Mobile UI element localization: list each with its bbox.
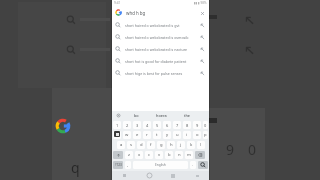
button[interactable]: Insert suggestion bbox=[199, 46, 206, 53]
button[interactable]: 1 bbox=[113, 121, 121, 129]
button[interactable]: Keyboard settings bbox=[112, 111, 125, 120]
staticText: m bbox=[187, 152, 191, 158]
button[interactable]: l bbox=[197, 141, 205, 149]
staticText: z bbox=[128, 152, 130, 158]
staticText: whd h bg bbox=[126, 10, 198, 16]
button[interactable]: , bbox=[125, 161, 131, 169]
button[interactable] bbox=[198, 161, 208, 169]
staticText: t bbox=[156, 132, 158, 138]
staticText: g bbox=[160, 142, 163, 148]
button[interactable]: x bbox=[135, 151, 143, 159]
staticText: j bbox=[180, 142, 182, 148]
staticText: hoera bbox=[156, 113, 167, 118]
staticText: i bbox=[186, 132, 188, 138]
button[interactable]: bo bbox=[125, 111, 147, 120]
button[interactable]: q bbox=[113, 131, 121, 139]
button[interactable]: p bbox=[203, 131, 208, 139]
staticText: r bbox=[146, 132, 148, 138]
staticText: 6 bbox=[166, 123, 169, 128]
staticText: y bbox=[166, 132, 169, 138]
button[interactable]: d bbox=[137, 141, 145, 149]
button[interactable]: n bbox=[175, 151, 183, 159]
button[interactable]: e bbox=[133, 131, 141, 139]
button[interactable]: whd h bg bbox=[115, 6, 206, 19]
button[interactable]: v bbox=[155, 151, 163, 159]
staticText: n bbox=[178, 152, 181, 158]
button[interactable]: 8 bbox=[183, 121, 191, 129]
button[interactable]: short haired o webcbrated is nacture bbox=[115, 43, 206, 55]
staticText: 0 bbox=[204, 123, 207, 128]
button[interactable]: g bbox=[157, 141, 165, 149]
staticText: 1 bbox=[116, 123, 119, 128]
button[interactable]: i bbox=[183, 131, 191, 139]
button[interactable]: r bbox=[143, 131, 151, 139]
staticText: ▮▮ ▮ 98% bbox=[194, 1, 207, 5]
button[interactable]: f bbox=[147, 141, 155, 149]
staticText: f bbox=[150, 142, 152, 148]
staticText: 8 bbox=[186, 123, 189, 128]
button[interactable]: a bbox=[117, 141, 125, 149]
button[interactable]: the bbox=[176, 111, 198, 120]
button[interactable] bbox=[113, 151, 123, 159]
staticText: o bbox=[196, 132, 199, 138]
button[interactable]: s bbox=[127, 141, 135, 149]
staticText: bo bbox=[134, 113, 139, 118]
button[interactable]: Insert suggestion bbox=[199, 34, 206, 41]
button[interactable]: Back bbox=[112, 171, 137, 180]
button[interactable]: Insert suggestion bbox=[199, 22, 206, 29]
staticText: w bbox=[125, 132, 129, 138]
button[interactable]: o bbox=[193, 131, 201, 139]
staticText: 7 bbox=[176, 123, 179, 128]
staticText: 4 bbox=[146, 123, 149, 128]
button[interactable]: u bbox=[173, 131, 181, 139]
staticText: u bbox=[176, 132, 179, 138]
staticText: short hige is best for pulse senses bbox=[125, 71, 199, 76]
button[interactable] bbox=[195, 151, 205, 159]
staticText: v bbox=[158, 152, 161, 158]
staticText: 0 bbox=[248, 140, 257, 159]
button[interactable]: short haired o webcbrated is gvt bbox=[115, 19, 206, 31]
button[interactable]: t bbox=[153, 131, 161, 139]
button[interactable]: h bbox=[167, 141, 175, 149]
button[interactable]: 9 bbox=[193, 121, 201, 129]
button[interactable]: 7 bbox=[173, 121, 181, 129]
staticText: ?123 bbox=[115, 163, 122, 167]
button[interactable]: m bbox=[185, 151, 193, 159]
button[interactable]: 5 bbox=[153, 121, 161, 129]
staticText: , bbox=[127, 162, 129, 168]
staticText: . bbox=[192, 162, 194, 168]
staticText: short haired o webcbrated is osmosib bbox=[125, 35, 199, 40]
button[interactable]: y bbox=[163, 131, 171, 139]
staticText: c bbox=[148, 152, 151, 158]
button[interactable]: Hide keyboard bbox=[185, 171, 209, 180]
button[interactable]: . bbox=[190, 161, 196, 169]
button[interactable]: Insert suggestion bbox=[199, 70, 206, 77]
button[interactable]: Home bbox=[137, 171, 161, 180]
staticText: k bbox=[190, 142, 193, 148]
button[interactable]: 0 bbox=[203, 121, 208, 129]
button[interactable]: 2 bbox=[123, 121, 131, 129]
staticText: e bbox=[136, 132, 139, 138]
button[interactable]: hoera bbox=[147, 111, 176, 120]
button[interactable]: 3 bbox=[133, 121, 141, 129]
button[interactable]: c bbox=[145, 151, 153, 159]
button[interactable]: z bbox=[125, 151, 133, 159]
button[interactable]: b bbox=[165, 151, 173, 159]
button[interactable]: English bbox=[133, 161, 188, 169]
button[interactable]: 4 bbox=[143, 121, 151, 129]
button[interactable]: short hot is good for diabete patient bbox=[115, 55, 206, 67]
staticText: x bbox=[138, 152, 141, 158]
button[interactable]: Clear search bbox=[198, 9, 206, 17]
button[interactable]: k bbox=[187, 141, 195, 149]
button[interactable]: short hige is best for pulse senses bbox=[115, 67, 206, 79]
button[interactable]: 6 bbox=[163, 121, 171, 129]
button[interactable]: j bbox=[177, 141, 185, 149]
button[interactable]: Recents bbox=[161, 171, 185, 180]
staticText: l bbox=[200, 142, 202, 148]
button[interactable]: Insert suggestion bbox=[199, 58, 206, 65]
button[interactable]: short haired o webcbrated is osmosib bbox=[115, 31, 206, 43]
button[interactable]: w bbox=[123, 131, 131, 139]
button[interactable]: ?123 bbox=[113, 161, 123, 169]
staticText: 9 bbox=[196, 123, 199, 128]
